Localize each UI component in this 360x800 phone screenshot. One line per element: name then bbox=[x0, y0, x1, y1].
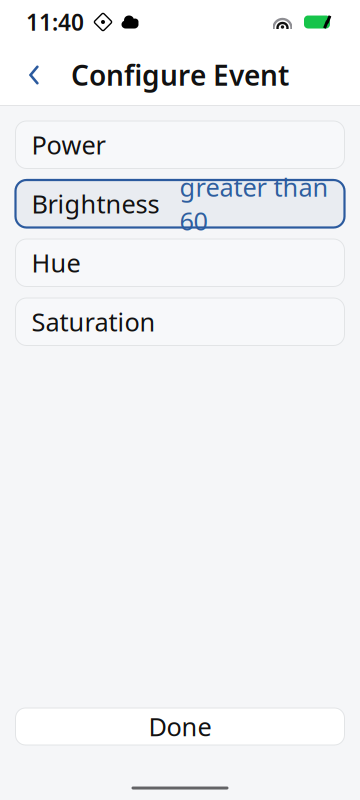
staticText: Configure Event bbox=[71, 56, 289, 94]
staticText: Power bbox=[31, 128, 105, 161]
staticText: Saturation bbox=[31, 305, 155, 338]
staticText: Hue bbox=[31, 246, 80, 279]
button[interactable]: Brightness bbox=[15, 180, 344, 227]
button[interactable]: Back bbox=[12, 53, 56, 97]
staticText: greater than 60 bbox=[179, 170, 328, 237]
button[interactable]: Hue bbox=[15, 239, 344, 286]
button[interactable]: Saturation bbox=[15, 298, 344, 345]
button[interactable]: Power bbox=[15, 121, 344, 168]
staticText: Done bbox=[148, 710, 211, 743]
staticText: 11:40 bbox=[26, 7, 84, 37]
button[interactable]: Done bbox=[15, 708, 344, 745]
staticText: Brightness bbox=[31, 187, 159, 220]
